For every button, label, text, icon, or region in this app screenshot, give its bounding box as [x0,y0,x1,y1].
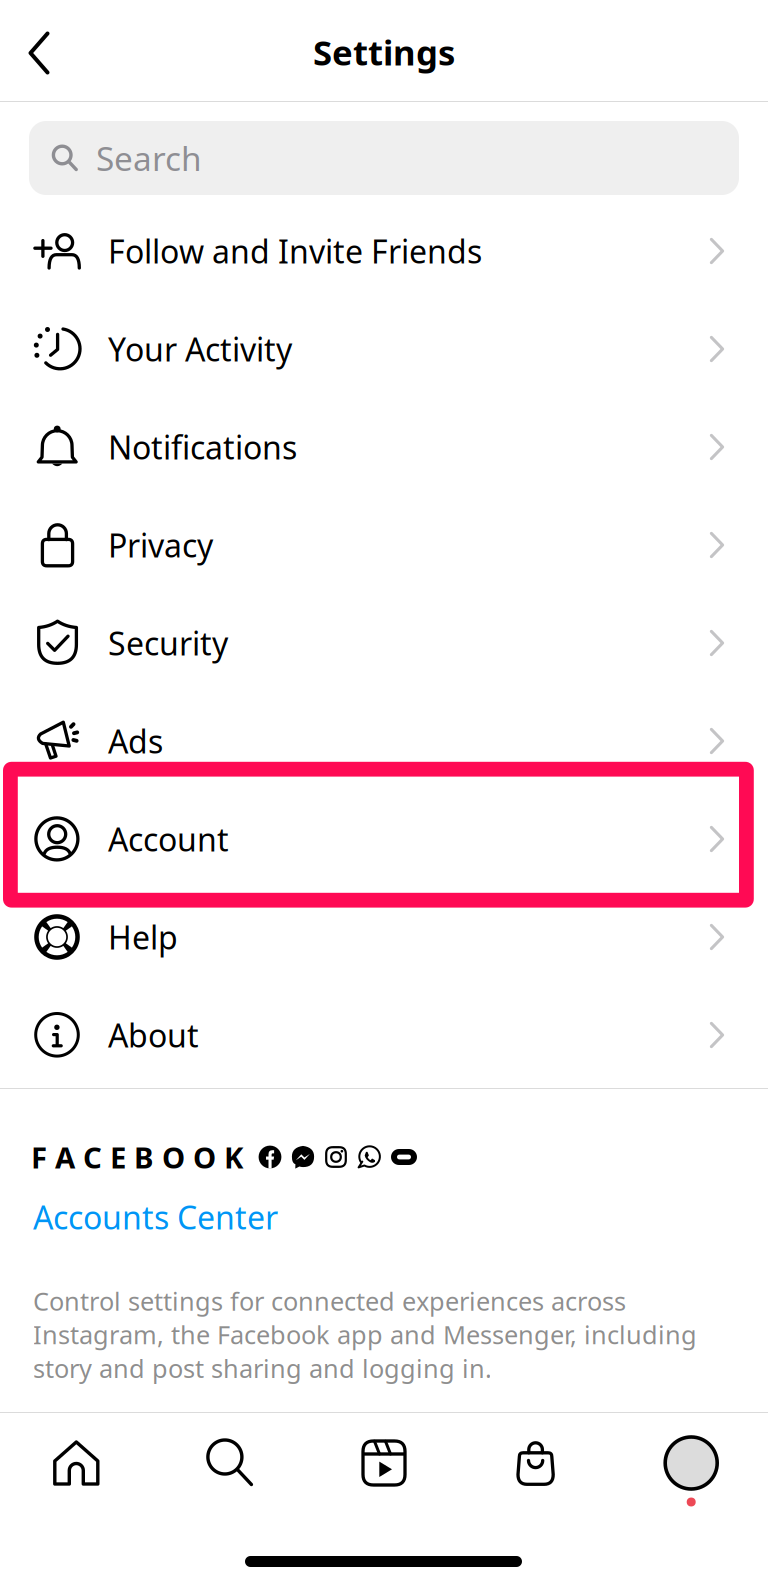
staticText: Account [108,818,229,860]
button[interactable]: Ads [0,692,768,790]
button[interactable]: Accounts Center [33,1193,333,1241]
staticText: Control settings for connected experienc… [33,1284,697,1385]
staticText: Settings [313,29,455,75]
staticText: Notifications [108,426,297,468]
button[interactable]: Follow and Invite Friends [0,202,768,300]
staticText: Your Activity [108,328,292,370]
button[interactable]: Security [0,594,768,692]
button[interactable]: Notifications [0,398,768,496]
staticText: F A C E B O O K [31,1137,243,1176]
staticText: Accounts Center [33,1196,278,1238]
button[interactable]: Account [0,790,768,888]
button[interactable]: Your Activity [0,300,768,398]
button[interactable]: Shop [461,1413,614,1513]
staticText: Help [108,916,178,958]
button[interactable]: Search [154,1413,307,1513]
button[interactable]: Back [0,5,80,101]
staticText: Ads [108,720,163,762]
button[interactable]: Reels [307,1413,461,1513]
staticText: Security [108,622,228,664]
button[interactable]: Search [29,121,739,195]
staticText: Search [96,136,202,180]
staticText: Follow and Invite Friends [108,230,482,272]
staticText: About [108,1014,199,1056]
staticText: Privacy [108,524,213,566]
button[interactable]: Help [0,888,768,986]
button[interactable]: Privacy [0,496,768,594]
button[interactable]: Home [0,1413,154,1513]
button[interactable]: About [0,986,768,1084]
button[interactable]: Profile [614,1413,768,1513]
